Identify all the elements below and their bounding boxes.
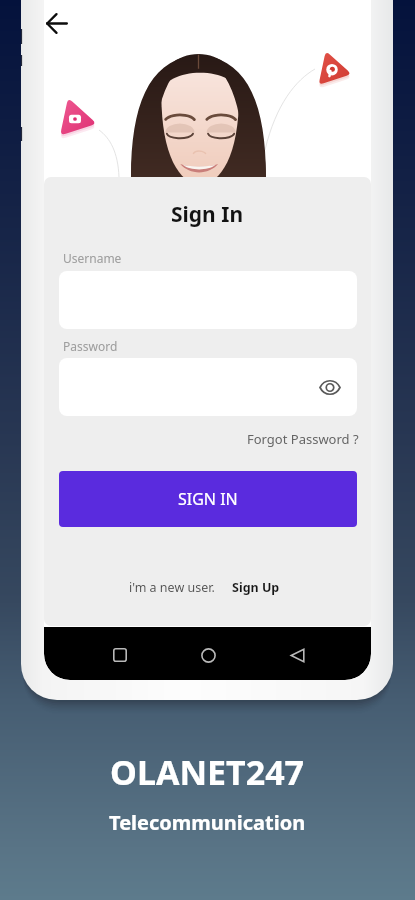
staticText: SIGN IN <box>178 488 238 510</box>
staticText: Username <box>63 250 122 266</box>
button[interactable]: SIGN IN <box>59 471 357 527</box>
button[interactable]: Forgot Password ? <box>247 430 359 448</box>
button[interactable]: Home <box>188 635 228 675</box>
staticText: Telecommunication <box>109 809 306 836</box>
staticText: OLANET247 <box>110 749 305 795</box>
button[interactable]: Show password <box>316 373 344 401</box>
button[interactable]: Show password <box>59 358 357 416</box>
button[interactable]: Recent apps <box>100 635 140 675</box>
button[interactable]: Back <box>277 635 317 675</box>
button[interactable]: Sign Up <box>232 579 280 596</box>
staticText: i'm a new user. <box>129 579 215 596</box>
button[interactable]: Back <box>44 3 77 43</box>
staticText: Password <box>63 338 118 354</box>
staticText: Sign In <box>171 200 244 229</box>
